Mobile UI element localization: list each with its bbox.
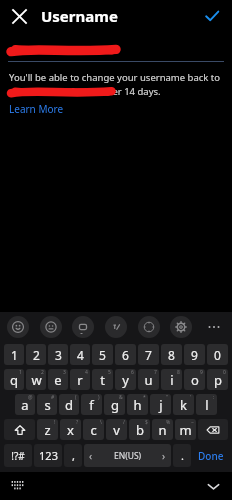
button[interactable]: Backspace xyxy=(198,419,228,440)
button[interactable]: Switch keyboard xyxy=(6,475,28,497)
button[interactable]: o xyxy=(184,369,205,390)
button[interactable]: h xyxy=(127,394,148,415)
staticText: 1 xyxy=(19,369,22,376)
staticText: $ xyxy=(145,419,148,426)
staticText: m xyxy=(179,421,192,439)
staticText: d xyxy=(65,396,73,414)
button[interactable]: m xyxy=(175,419,196,440)
button[interactable]: n xyxy=(152,419,173,440)
staticText: 123 xyxy=(39,448,58,463)
button[interactable]: !?# xyxy=(4,444,32,467)
staticText: : xyxy=(213,394,215,401)
button[interactable]: j xyxy=(150,394,171,415)
staticText: 1 xyxy=(11,347,18,363)
staticText: ? xyxy=(76,419,79,426)
staticText: 3 xyxy=(63,369,66,376)
button[interactable]: , xyxy=(64,444,82,467)
button[interactable]: g xyxy=(104,394,125,415)
button[interactable]: x xyxy=(60,419,81,440)
button[interactable]: p xyxy=(207,369,228,390)
staticText: ' xyxy=(190,394,192,401)
button[interactable]: Clipboard xyxy=(72,316,94,338)
staticText: 5 xyxy=(108,369,111,376)
staticText: 7 xyxy=(154,369,157,376)
staticText: # xyxy=(51,394,55,401)
staticText: b xyxy=(136,421,144,439)
button[interactable]: 5 xyxy=(92,344,113,365)
button[interactable]: c xyxy=(83,419,104,440)
button[interactable]: e xyxy=(48,369,68,390)
staticText: w xyxy=(31,371,42,389)
button[interactable]: Emoji xyxy=(40,316,62,338)
staticText: ! xyxy=(54,419,56,426)
staticText: 8 xyxy=(168,347,175,363)
button[interactable]: Hide keyboard xyxy=(202,475,224,497)
button[interactable]: r xyxy=(70,369,90,390)
button[interactable]: More options xyxy=(203,316,225,338)
staticText: 7 xyxy=(145,347,152,363)
button[interactable]: s xyxy=(37,394,57,415)
button[interactable]: k xyxy=(173,394,194,415)
staticText: 6 xyxy=(122,347,129,363)
staticText: x xyxy=(67,421,74,439)
staticText: k xyxy=(180,396,187,414)
button[interactable]: Handwriting xyxy=(105,316,127,338)
staticText: r xyxy=(77,371,83,389)
button[interactable]: 1 xyxy=(4,344,24,365)
button[interactable]: Close xyxy=(6,3,32,29)
staticText: h xyxy=(133,396,142,414)
button[interactable]: 3 xyxy=(48,344,68,365)
staticText: 0 xyxy=(223,369,226,376)
button[interactable]: Space xyxy=(84,444,171,467)
button[interactable]: w xyxy=(26,369,46,390)
button[interactable]: 6 xyxy=(115,344,136,365)
button[interactable]: y xyxy=(115,369,136,390)
button[interactable]: 9 xyxy=(184,344,205,365)
button[interactable]: u xyxy=(138,369,159,390)
staticText: 3 xyxy=(55,347,62,363)
button[interactable]: Shift xyxy=(4,419,35,440)
staticText: s xyxy=(44,396,51,414)
button[interactable]: b xyxy=(129,419,150,440)
staticText: @ xyxy=(28,394,33,401)
staticText: !?# xyxy=(11,449,25,463)
button[interactable]: q xyxy=(4,369,24,390)
button[interactable]: 2 xyxy=(26,344,46,365)
staticText: 4 xyxy=(77,347,84,363)
button[interactable]: 0 xyxy=(207,344,228,365)
staticText: c xyxy=(90,421,97,439)
button[interactable]: 8 xyxy=(161,344,182,365)
staticText: › xyxy=(162,449,166,463)
button[interactable]: 123 xyxy=(34,444,62,467)
staticText: 8 xyxy=(177,369,180,376)
button[interactable]: d xyxy=(59,394,79,415)
staticText: 0 xyxy=(214,347,221,363)
button[interactable]: v xyxy=(106,419,127,440)
staticText: & xyxy=(119,394,123,401)
staticText: 6 xyxy=(131,369,134,376)
button[interactable]: Settings xyxy=(170,316,192,338)
button[interactable]: 4 xyxy=(70,344,90,365)
button[interactable]: f xyxy=(81,394,102,415)
button[interactable]: Learn More xyxy=(9,102,64,116)
button[interactable]: t xyxy=(92,369,113,390)
button[interactable]: z xyxy=(37,419,58,440)
button[interactable]: i xyxy=(161,369,182,390)
button[interactable]: Confirm xyxy=(199,3,225,29)
staticText: t xyxy=(100,371,105,389)
button[interactable]: 7 xyxy=(138,344,159,365)
button[interactable]: Done xyxy=(193,444,228,467)
button[interactable]: . xyxy=(173,444,191,467)
button[interactable]: l xyxy=(196,394,217,415)
staticText: Done xyxy=(198,449,224,463)
staticText: 9 xyxy=(200,369,203,376)
button[interactable]: Move keyboard xyxy=(138,316,160,338)
button[interactable]: Sticker xyxy=(7,316,29,338)
staticText: You'll be able to change your username b… xyxy=(9,71,221,84)
staticText: u xyxy=(144,371,153,389)
staticText: , xyxy=(72,448,75,463)
staticText: v xyxy=(113,421,120,439)
button[interactable]: a xyxy=(15,394,35,415)
staticText: 2 xyxy=(41,369,44,376)
staticText: for another 14 days. xyxy=(9,85,161,98)
